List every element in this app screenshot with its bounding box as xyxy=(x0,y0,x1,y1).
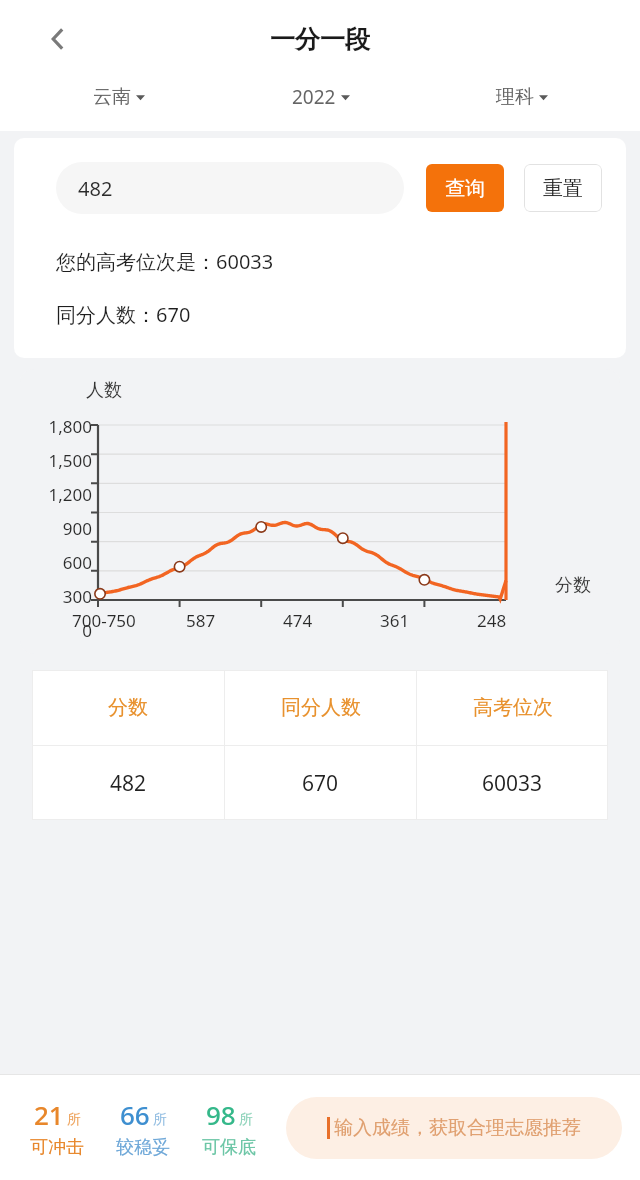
staticText: 所 xyxy=(239,1111,253,1129)
staticText: 60033 xyxy=(482,769,543,798)
staticText: 700-750 xyxy=(72,609,136,632)
button[interactable]: 670 xyxy=(225,746,416,820)
staticText: 一分一段 xyxy=(270,24,370,55)
staticText: 可保底 xyxy=(202,1136,256,1159)
button[interactable]: 482 xyxy=(56,162,404,214)
staticText: 同分人数 xyxy=(281,695,361,720)
staticText: 66 xyxy=(120,1097,150,1132)
staticText: 重置 xyxy=(543,176,583,201)
button[interactable]: 理科 xyxy=(486,79,558,115)
staticText: 98 xyxy=(206,1097,236,1132)
staticText: 云南 xyxy=(93,85,131,109)
button[interactable]: 重置 xyxy=(524,164,602,212)
button[interactable]: 输入成绩，获取合理志愿推荐 xyxy=(286,1097,622,1159)
button[interactable]: Back xyxy=(34,15,82,63)
button[interactable]: 高考位次 xyxy=(417,670,608,745)
staticText: 474 xyxy=(283,609,313,632)
staticText: 1,800 xyxy=(26,415,92,438)
button[interactable]: 云南 xyxy=(83,79,155,115)
staticText: 理科 xyxy=(496,85,534,109)
button[interactable]: 66 xyxy=(100,1097,186,1159)
button[interactable]: 2022 xyxy=(282,78,360,116)
button[interactable]: 482 xyxy=(32,746,224,820)
button[interactable]: 同分人数 xyxy=(225,670,416,745)
staticText: 482 xyxy=(78,175,113,202)
staticText: 21 xyxy=(34,1097,64,1132)
staticText: 361 xyxy=(380,609,410,632)
staticText: 300 xyxy=(26,585,92,608)
staticText: 同分人数：670 xyxy=(56,301,191,328)
button[interactable]: 98 xyxy=(186,1097,272,1159)
staticText: 1,200 xyxy=(26,483,92,506)
staticText: 所 xyxy=(67,1111,81,1129)
staticText: 248 xyxy=(477,609,507,632)
staticText: 所 xyxy=(153,1111,167,1129)
staticText: 可冲击 xyxy=(30,1136,84,1159)
staticText: 较稳妥 xyxy=(116,1136,170,1159)
button[interactable]: 21 xyxy=(14,1097,100,1159)
staticText: 输入成绩，获取合理志愿推荐 xyxy=(334,1116,581,1140)
staticText: 您的高考位次是：60033 xyxy=(56,248,274,275)
staticText: 587 xyxy=(186,609,216,632)
staticText: 0 xyxy=(26,619,92,642)
staticText: 670 xyxy=(302,769,339,798)
staticText: 482 xyxy=(110,769,147,798)
button[interactable]: 查询 xyxy=(426,164,504,212)
staticText: 查询 xyxy=(445,176,485,201)
button[interactable]: 60033 xyxy=(417,746,608,820)
staticText: 600 xyxy=(26,551,92,574)
staticText: 分数 xyxy=(108,695,148,720)
staticText: 高考位次 xyxy=(473,695,553,720)
button[interactable]: 分数 xyxy=(32,670,224,745)
staticText: 2022 xyxy=(292,84,336,110)
staticText: 900 xyxy=(26,517,92,540)
staticText: 分数 xyxy=(555,574,591,597)
staticText: 1,500 xyxy=(26,449,92,472)
staticText: 人数 xyxy=(86,379,122,402)
